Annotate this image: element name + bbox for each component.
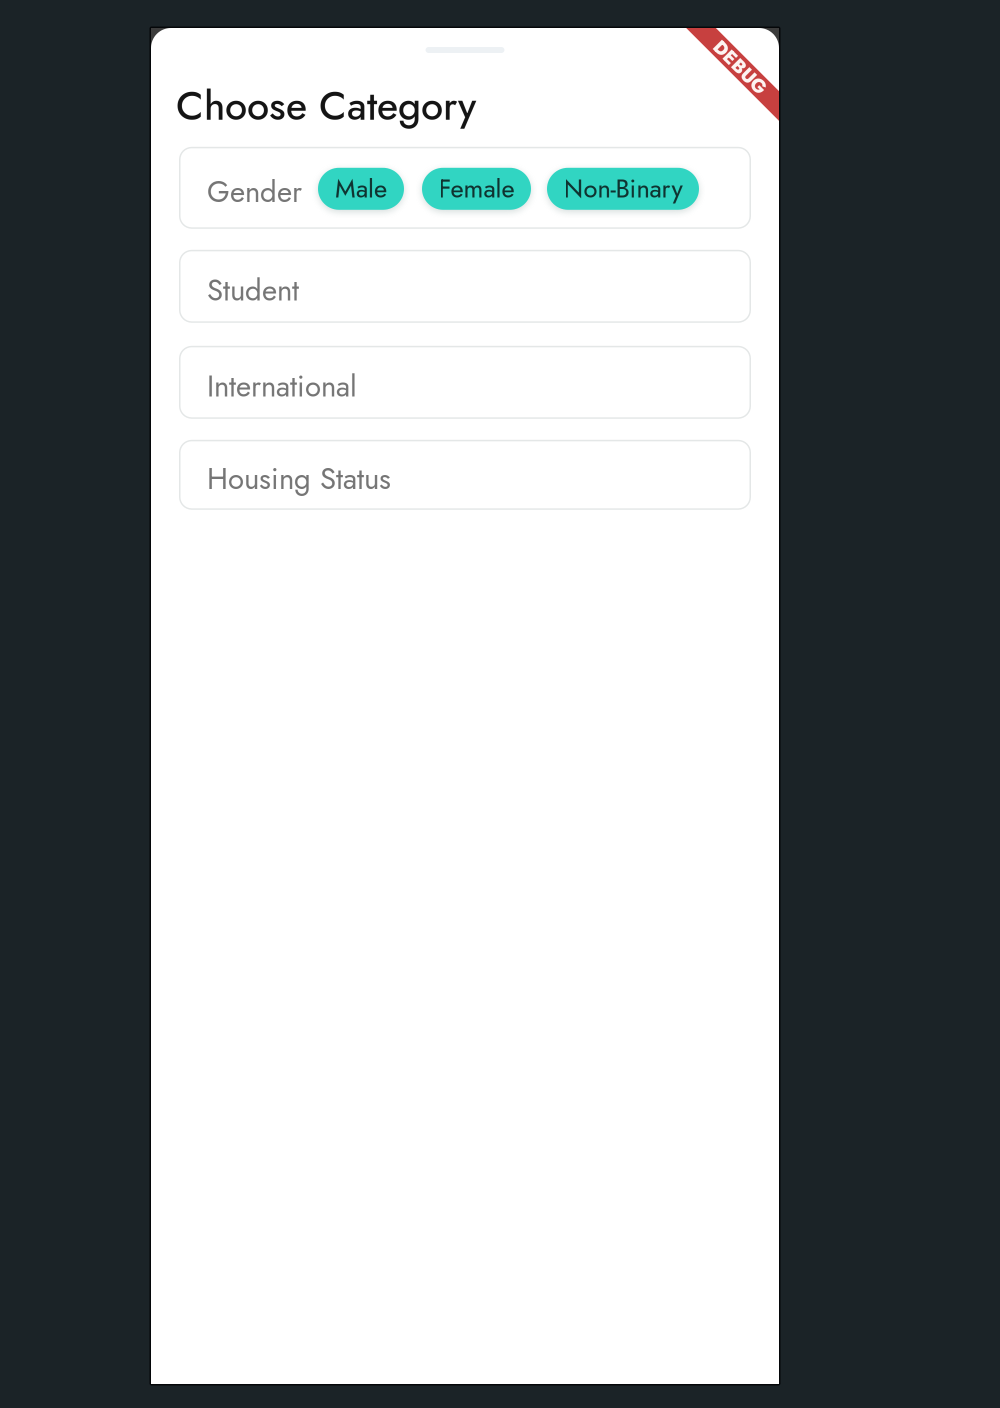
staticText: Male (335, 170, 387, 207)
staticText: Choose Category (176, 77, 476, 135)
staticText: Female (438, 170, 514, 207)
button[interactable]: Housing Status (179, 440, 751, 510)
staticText: International (207, 365, 357, 407)
button[interactable]: Male (318, 167, 404, 209)
button[interactable]: Non-Binary (547, 167, 699, 209)
staticText: Housing Status (207, 458, 391, 500)
button[interactable]: Student (179, 250, 751, 323)
staticText: Non-Binary (563, 170, 682, 207)
button[interactable]: Female (422, 167, 531, 209)
staticText: Gender (207, 171, 302, 213)
staticText: DEBUG (706, 53, 773, 80)
button[interactable]: International (179, 346, 751, 419)
staticText: Student (207, 269, 299, 311)
